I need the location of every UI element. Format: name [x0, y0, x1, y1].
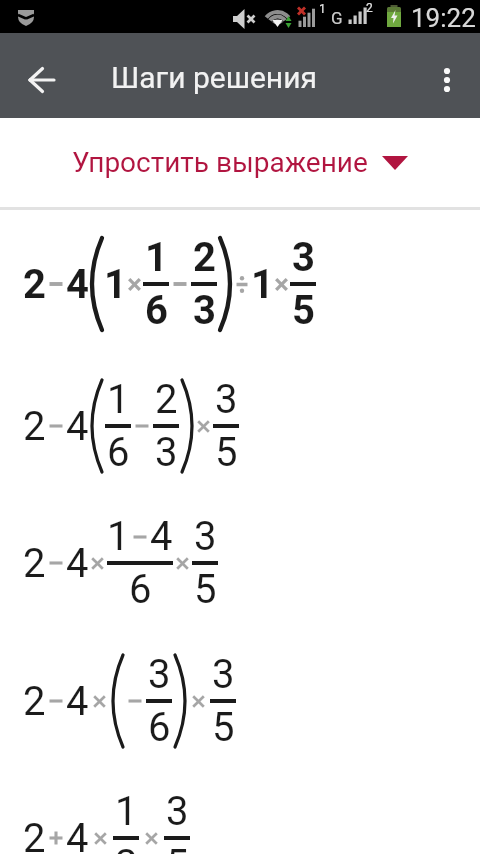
staticText: 4	[66, 540, 89, 587]
staticText: 3	[166, 788, 189, 835]
staticText: 4	[150, 513, 173, 560]
staticText: 5	[166, 841, 189, 854]
staticText: 3	[212, 651, 235, 698]
staticText: 19:22	[411, 3, 476, 33]
staticText: 2	[23, 815, 46, 854]
staticText: 3	[292, 234, 315, 281]
staticText: G	[331, 8, 343, 28]
staticText: 5	[292, 287, 315, 334]
staticText: 4	[66, 261, 89, 308]
staticText: 2	[23, 540, 46, 587]
staticText: 1	[145, 234, 168, 281]
staticText: 2	[23, 403, 46, 450]
staticText: 4	[66, 815, 89, 854]
staticText: 3	[194, 513, 217, 560]
staticText: 1	[104, 261, 127, 308]
staticText: 6	[148, 704, 171, 751]
staticText: 2	[366, 1, 373, 15]
staticText: 3	[155, 429, 178, 476]
staticText: 6	[107, 429, 130, 476]
staticText: 2	[23, 678, 46, 725]
staticText: 4	[66, 678, 89, 725]
staticText: Шаги решения	[111, 60, 317, 95]
staticText: 1	[251, 261, 274, 308]
staticText: 5	[215, 429, 238, 476]
staticText: 6	[129, 566, 152, 613]
staticText: 1	[107, 376, 130, 423]
staticText: 3	[148, 651, 171, 698]
staticText: 5	[194, 566, 217, 613]
staticText: 2	[193, 234, 216, 281]
staticText: 6	[145, 287, 168, 334]
staticText: Упростить выражение	[72, 146, 368, 179]
staticText: 2	[155, 376, 178, 423]
staticText: 1	[107, 513, 130, 560]
staticText: 1	[115, 788, 138, 835]
staticText: 5	[212, 704, 235, 751]
staticText: 2	[23, 261, 46, 308]
staticText: 3	[193, 287, 216, 334]
staticText: 1	[319, 2, 326, 16]
staticText: 4	[66, 403, 89, 450]
staticText: 2	[115, 841, 138, 854]
staticText: 3	[215, 376, 238, 423]
